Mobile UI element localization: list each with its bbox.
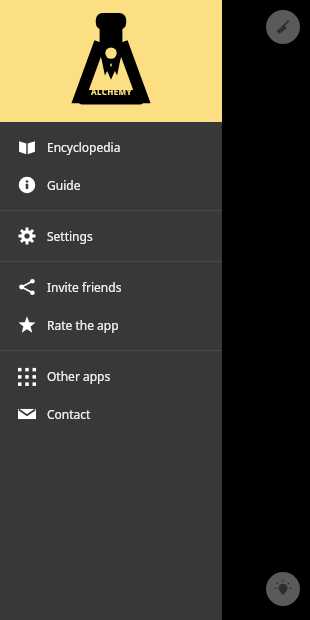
staticText: Invite friends	[47, 279, 122, 295]
staticText: Encyclopedia	[47, 139, 121, 155]
staticText: ALCHEMY	[91, 86, 132, 97]
button[interactable]: Encyclopedia	[0, 128, 222, 166]
button[interactable]: Contact	[0, 395, 222, 433]
button[interactable]: Rate the app	[0, 306, 222, 344]
button[interactable]: Clear	[266, 10, 300, 44]
button[interactable]: Guide	[0, 166, 222, 204]
button[interactable]: Settings	[0, 217, 222, 255]
button[interactable]: ALCHEMY	[0, 0, 222, 122]
staticText: Guide	[47, 177, 81, 193]
button[interactable]: Other apps	[0, 357, 222, 395]
staticText: Contact	[47, 406, 91, 422]
button[interactable]: Invite friends	[0, 268, 222, 306]
button[interactable]: Hint	[266, 572, 300, 606]
staticText: Settings	[47, 228, 93, 244]
staticText: Other apps	[47, 368, 111, 384]
staticText: Rate the app	[47, 317, 119, 333]
